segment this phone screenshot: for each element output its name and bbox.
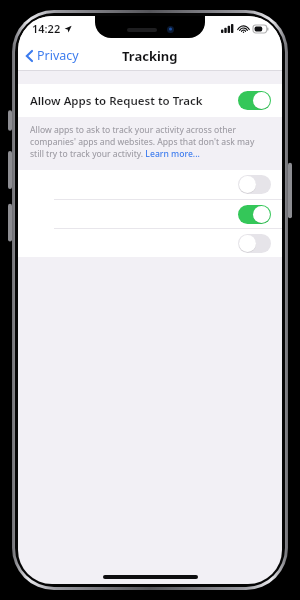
staticText: Allow apps to ask to track your activity…: [30, 124, 270, 160]
button[interactable]: Toggle on: [238, 91, 271, 110]
button[interactable]: Toggle off: [238, 234, 271, 253]
staticText: Allow Apps to Request to Track: [30, 93, 238, 109]
staticText: Privacy: [37, 47, 79, 64]
button[interactable]: App 3 tracking: [18, 229, 282, 257]
button[interactable]: App 1 tracking: [18, 170, 282, 199]
button[interactable]: App 2 tracking: [18, 200, 282, 228]
button[interactable]: Allow Apps to Request to Track: [18, 84, 282, 117]
button[interactable]: Privacy: [18, 43, 87, 68]
button[interactable]: Toggle off: [238, 175, 271, 194]
button[interactable]: Toggle on: [238, 205, 271, 224]
staticText: Tracking: [122, 47, 178, 65]
staticText: 14:22: [32, 21, 61, 36]
